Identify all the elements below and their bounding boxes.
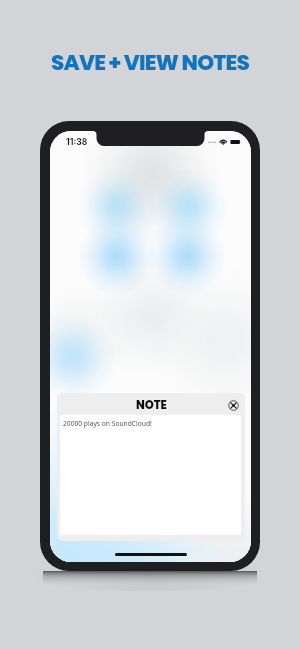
staticText: 11:38 [66, 137, 88, 147]
button[interactable]: Close note [226, 398, 240, 412]
staticText: 20000 plays on SoundCloud! [63, 419, 152, 428]
staticText: SAVE + VIEW NOTES [0, 47, 300, 77]
staticText: NOTE [136, 397, 167, 413]
button[interactable]: 20000 plays on SoundCloud! [60, 415, 241, 535]
